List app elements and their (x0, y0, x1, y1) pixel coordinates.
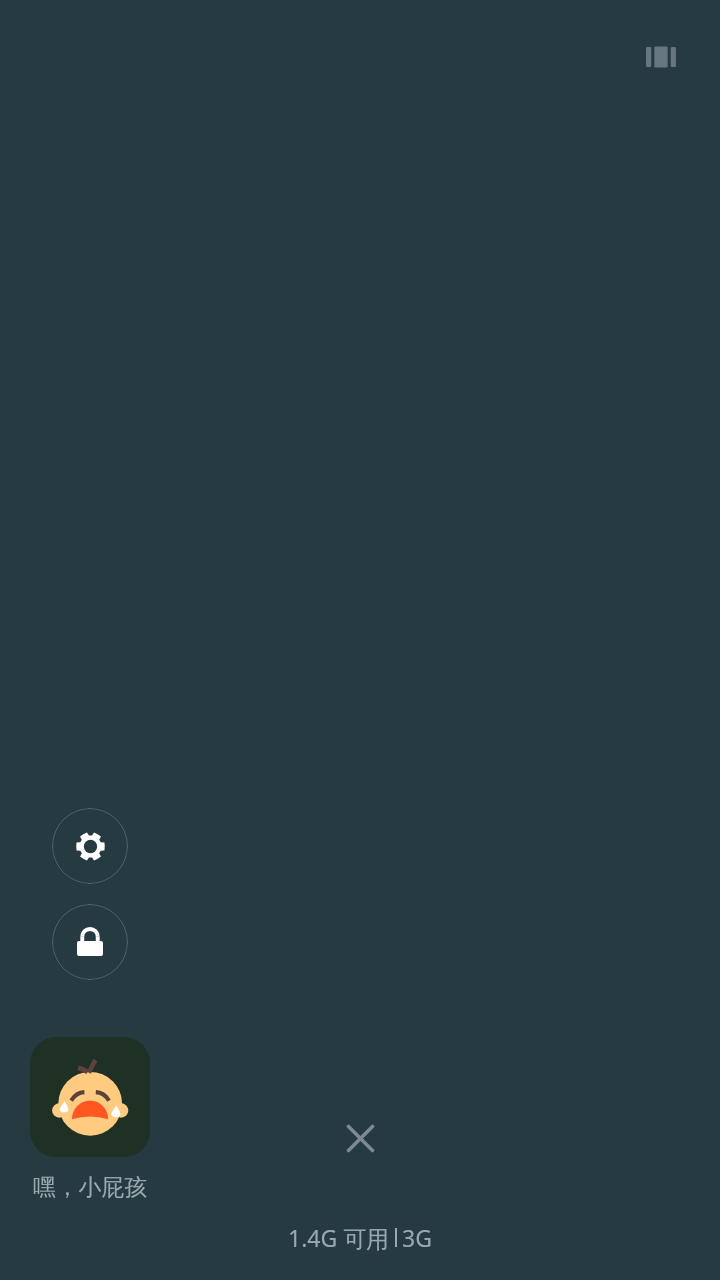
staticText: 1.4G 可用 (288, 1222, 390, 1253)
button[interactable]: Close all (330, 1108, 390, 1168)
staticText: 嘿，小屁孩 (33, 1173, 147, 1202)
staticText: 3G (402, 1222, 432, 1253)
button[interactable]: Settings (52, 808, 128, 884)
button[interactable]: 嘿，小屁孩 (30, 1037, 150, 1202)
button[interactable]: Lock (52, 904, 128, 980)
button[interactable]: Recent apps (621, 17, 701, 97)
